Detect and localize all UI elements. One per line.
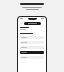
button[interactable]: Back xyxy=(20,22,23,25)
button[interactable] xyxy=(20,41,44,44)
button[interactable] xyxy=(20,56,44,59)
button[interactable] xyxy=(24,22,41,25)
button[interactable] xyxy=(20,51,44,54)
button[interactable] xyxy=(20,46,44,49)
button[interactable] xyxy=(20,36,44,39)
